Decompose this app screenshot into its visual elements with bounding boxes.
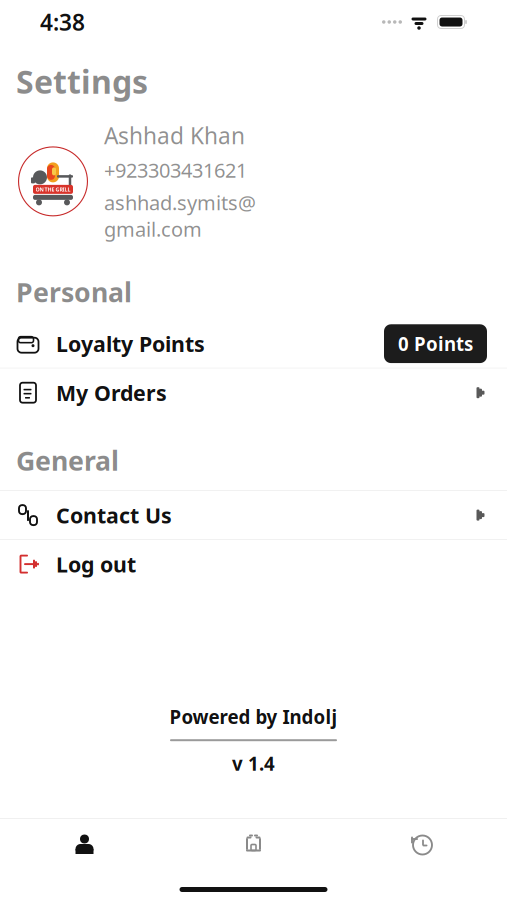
staticText: Log out	[56, 550, 136, 578]
staticText: v 1.4	[232, 751, 275, 776]
button[interactable]: Loyalty Points	[0, 320, 507, 368]
button[interactable]: My Orders	[0, 369, 507, 417]
staticText: Powered by Indolj	[169, 704, 337, 729]
button[interactable]: Log out	[0, 540, 507, 588]
button[interactable]: ON THE GRILL	[0, 102, 507, 242]
staticText: 0 Points	[398, 331, 473, 356]
staticText: Personal	[16, 274, 132, 310]
staticText: Ashhad Khan	[104, 120, 245, 151]
button[interactable]: Home	[169, 819, 338, 871]
staticText: Contact Us	[56, 501, 172, 529]
staticText: ashhad.symits@gmail.com	[104, 189, 256, 242]
staticText: Settings	[16, 60, 148, 102]
staticText: 4:38	[40, 7, 85, 37]
button[interactable]: Contact Us	[0, 491, 507, 539]
staticText: ON THE GRILL	[35, 186, 70, 193]
staticText: My Orders	[56, 378, 167, 407]
staticText: +923303431621	[104, 157, 247, 183]
staticText: Loyalty Points	[56, 329, 205, 358]
staticText: General	[16, 443, 119, 478]
button[interactable]: Profile	[0, 819, 169, 871]
button[interactable]: Order history	[338, 819, 507, 871]
